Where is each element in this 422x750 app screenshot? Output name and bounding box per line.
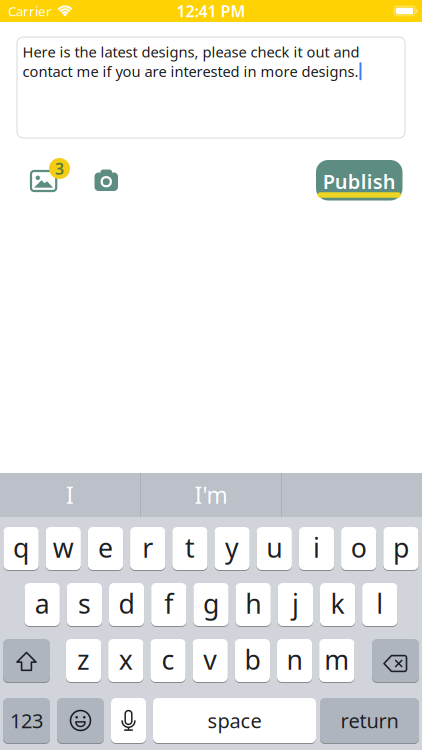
button[interactable]: u xyxy=(257,527,292,570)
staticText: y xyxy=(225,530,239,565)
staticText: z xyxy=(77,642,90,677)
staticText: g xyxy=(203,586,219,621)
button[interactable]: Camera xyxy=(94,169,118,191)
staticText: 12:41 PM xyxy=(176,0,245,22)
staticText: i xyxy=(313,530,320,565)
button[interactable]: j xyxy=(278,583,313,626)
staticText: l xyxy=(376,586,383,621)
staticText: I xyxy=(66,480,74,510)
button[interactable]: 123 xyxy=(3,698,50,743)
button[interactable]: x xyxy=(108,639,143,682)
button[interactable]: g xyxy=(193,583,229,626)
staticText: x xyxy=(119,642,133,677)
staticText: n xyxy=(287,642,303,677)
staticText: m xyxy=(324,642,349,677)
staticText: c xyxy=(161,642,174,677)
staticText: Publish xyxy=(323,168,396,195)
staticText: d xyxy=(119,586,135,621)
button[interactable]: w xyxy=(46,527,81,570)
staticText: p xyxy=(393,530,409,565)
staticText: j xyxy=(292,586,299,621)
button[interactable]: Publish xyxy=(316,160,402,200)
button[interactable]: Photo library xyxy=(31,158,70,191)
button[interactable]: Emoji xyxy=(57,698,104,743)
button[interactable]: I'm xyxy=(141,473,281,517)
button[interactable]: I xyxy=(0,473,140,517)
button[interactable]: t xyxy=(172,527,207,570)
button[interactable]: l xyxy=(362,583,397,626)
button[interactable]: r xyxy=(130,527,165,570)
button[interactable]: d xyxy=(109,583,144,626)
button[interactable]: y xyxy=(214,527,250,570)
staticText: space xyxy=(207,707,261,734)
staticText: contact me if you are interested in more… xyxy=(22,61,358,81)
button[interactable]: o xyxy=(341,527,376,570)
button[interactable]: return xyxy=(320,698,419,743)
staticText: Carrier xyxy=(8,2,52,20)
button[interactable]: b xyxy=(235,639,270,682)
staticText: o xyxy=(351,530,367,565)
button[interactable]: m xyxy=(319,639,354,682)
button[interactable]: h xyxy=(236,583,271,626)
staticText: 123 xyxy=(10,707,43,734)
button[interactable]: Delete xyxy=(372,639,419,682)
button[interactable]: z xyxy=(66,639,101,682)
staticText: u xyxy=(266,530,282,565)
button[interactable]: k xyxy=(320,583,355,626)
button[interactable]: s xyxy=(67,583,102,626)
staticText: f xyxy=(164,586,173,621)
button[interactable]: n xyxy=(277,639,312,682)
button[interactable]: Shift xyxy=(3,639,50,682)
button[interactable]: a xyxy=(25,583,60,626)
staticText: w xyxy=(53,530,74,565)
staticText: h xyxy=(245,586,261,621)
button[interactable]: v xyxy=(193,639,228,682)
staticText: a xyxy=(35,586,50,621)
button[interactable]: p xyxy=(383,527,418,570)
button[interactable]: Dictation xyxy=(111,698,146,743)
staticText: k xyxy=(331,586,345,621)
staticText: t xyxy=(185,530,195,565)
staticText: q xyxy=(13,530,29,565)
staticText: I'm xyxy=(194,480,227,510)
staticText: return xyxy=(340,707,398,734)
button[interactable]: i xyxy=(299,527,334,570)
staticText: e xyxy=(98,530,113,565)
staticText: r xyxy=(142,530,153,565)
button[interactable]: f xyxy=(151,583,186,626)
button[interactable]: c xyxy=(150,639,186,682)
staticText: s xyxy=(78,586,91,621)
button[interactable]: space xyxy=(153,698,316,743)
staticText: v xyxy=(203,642,217,677)
staticText: b xyxy=(244,642,260,677)
staticText: 3 xyxy=(55,158,64,179)
button[interactable]: e xyxy=(88,527,123,570)
button[interactable]: q xyxy=(3,527,39,570)
staticText: Here is the latest designs, please check… xyxy=(22,42,359,61)
